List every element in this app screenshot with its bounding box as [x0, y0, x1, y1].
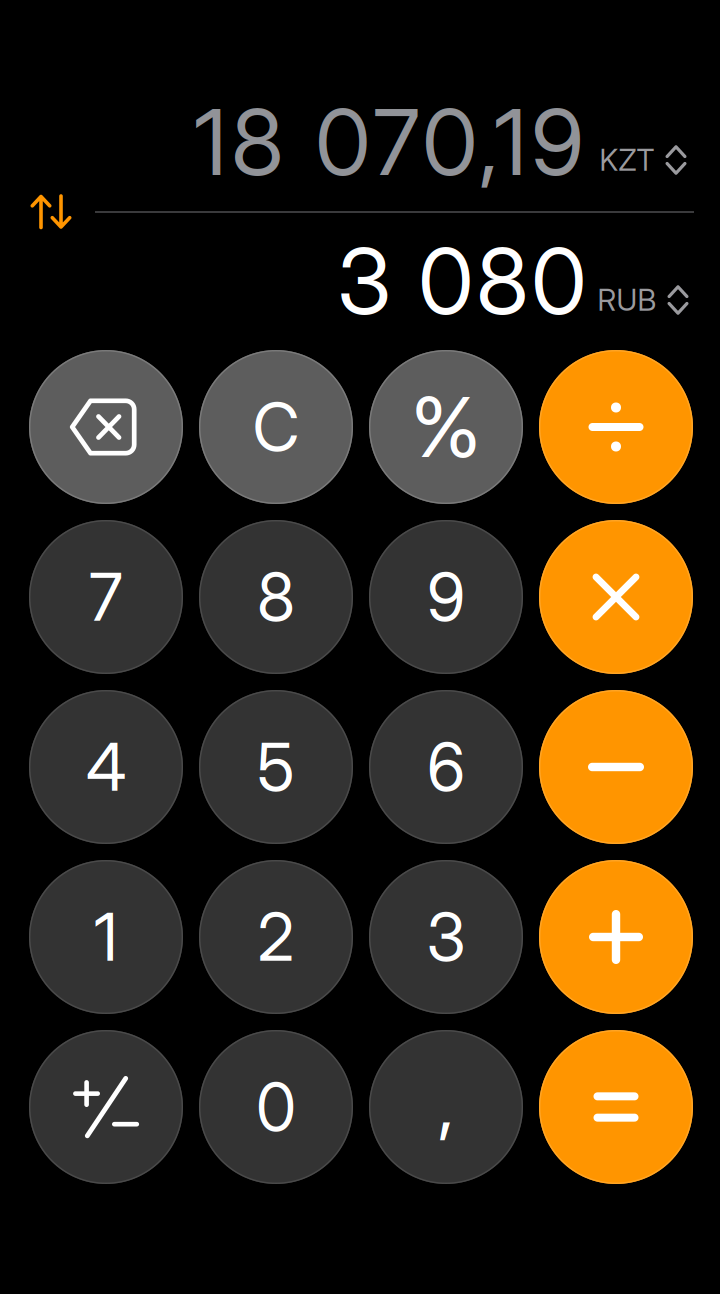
staticText: RUB	[597, 282, 656, 318]
staticText: ,	[438, 1058, 454, 1148]
staticText: 3	[426, 897, 465, 976]
button[interactable]: Change KZT	[599, 136, 686, 184]
button[interactable]: 8	[199, 520, 353, 674]
staticText: C	[252, 387, 299, 466]
button[interactable]: Change RUB	[597, 276, 688, 324]
button[interactable]: 4	[29, 690, 183, 844]
button[interactable]: 9	[369, 520, 523, 674]
staticText: 18 070,19	[194, 87, 584, 197]
button[interactable]: Swap currencies	[30, 194, 72, 229]
staticText: 7	[89, 557, 123, 636]
button[interactable]: 7	[29, 520, 183, 674]
button[interactable]: 6	[369, 690, 523, 844]
staticText: 0	[256, 1067, 296, 1146]
button[interactable]: Add	[539, 860, 693, 1014]
staticText: 8	[257, 557, 295, 636]
button[interactable]: 1	[29, 860, 183, 1014]
staticText: 2	[257, 897, 294, 976]
button[interactable]: 5	[199, 690, 353, 844]
button[interactable]: Delete	[29, 350, 183, 504]
staticText: 5	[257, 727, 295, 806]
button[interactable]: C	[199, 350, 353, 504]
staticText: 9	[427, 557, 465, 636]
staticText: 6	[427, 727, 465, 806]
button[interactable]: Divide	[539, 350, 693, 504]
button[interactable]: 2	[199, 860, 353, 1014]
button[interactable]: 0	[199, 1030, 353, 1184]
staticText: 4	[86, 727, 126, 806]
button[interactable]: 3	[369, 860, 523, 1014]
button[interactable]: Subtract	[539, 690, 693, 844]
staticText: 3 080	[337, 226, 587, 336]
staticText: 1	[94, 897, 118, 976]
staticText: KZT	[599, 142, 654, 178]
button[interactable]: ,	[369, 1030, 523, 1184]
button[interactable]: Plus minus	[29, 1030, 183, 1184]
button[interactable]: Multiply	[539, 520, 693, 674]
button[interactable]: Equals	[539, 1030, 693, 1184]
staticText: %	[411, 377, 481, 477]
button[interactable]: %	[369, 350, 523, 504]
